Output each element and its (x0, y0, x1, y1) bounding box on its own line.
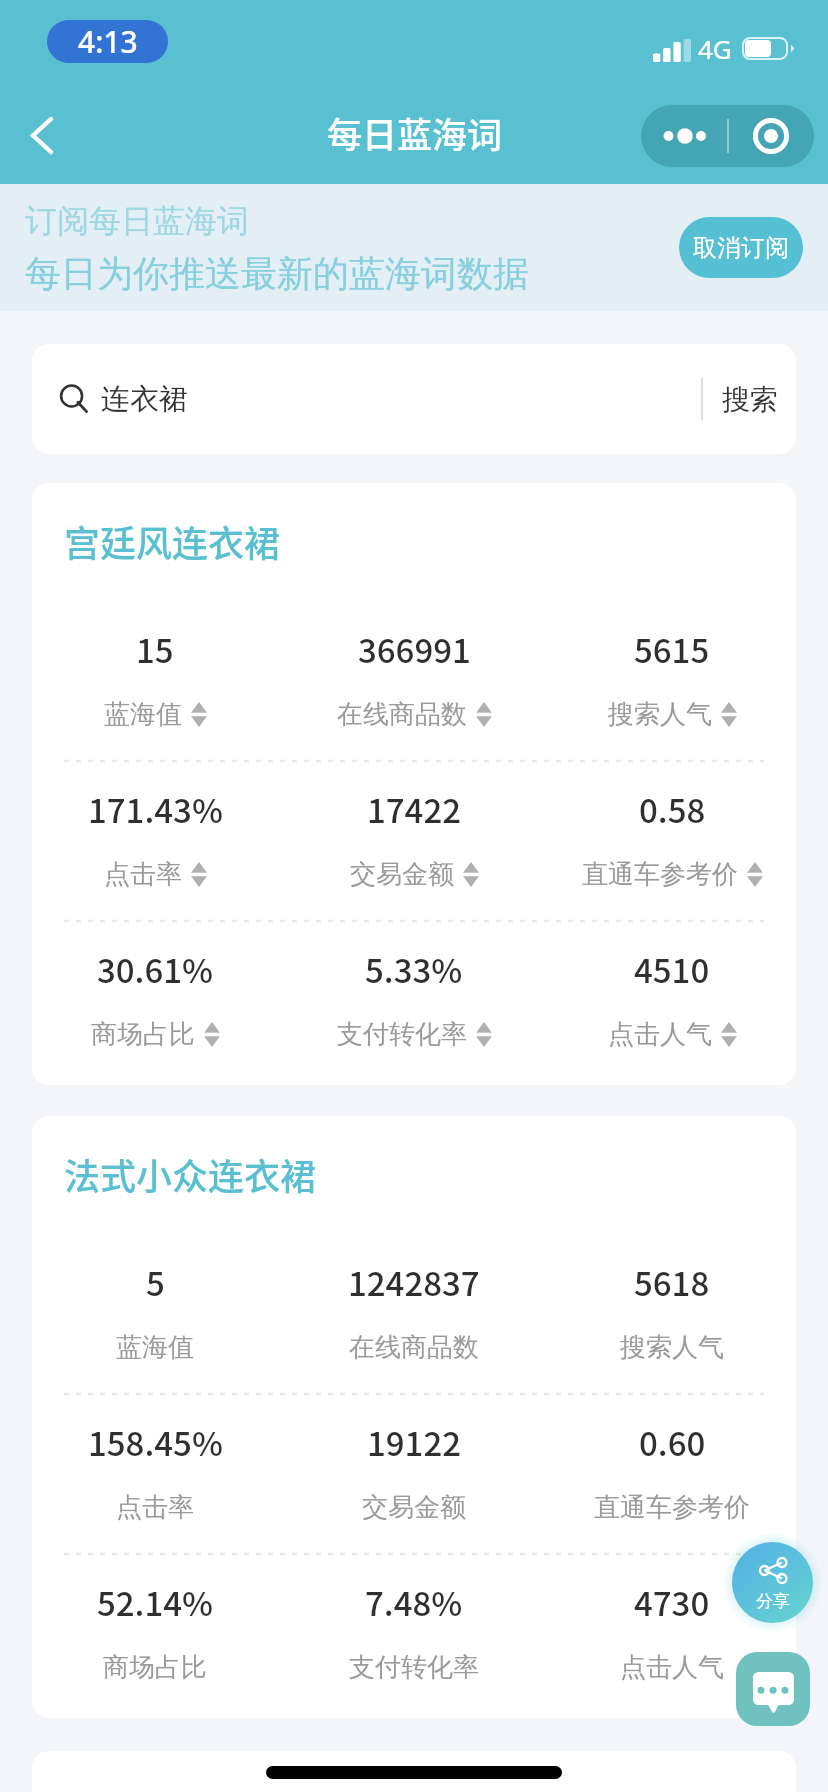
staticText: 0.58 (639, 785, 706, 833)
staticText: 366991 (358, 625, 471, 673)
staticText: 点击率 (116, 1491, 194, 1524)
button[interactable]: 宫廷风连衣裙 (32, 483, 796, 1085)
staticText: 分享 (756, 1591, 790, 1612)
staticText: 直通车参考价 (582, 858, 738, 891)
staticText: 17422 (367, 785, 462, 833)
button[interactable]: 分享 (732, 1542, 813, 1623)
staticText: 171.43% (88, 785, 223, 833)
staticText: 搜索 (722, 382, 778, 417)
staticText: 点击人气 (608, 1018, 712, 1051)
staticText: 直通车参考价 (594, 1491, 750, 1524)
staticText: 在线商品数 (337, 698, 467, 731)
button[interactable]: More options (641, 105, 727, 167)
staticText: 4510 (634, 945, 710, 993)
staticText: 0.60 (639, 1418, 706, 1466)
button[interactable]: Customer service chat (736, 1652, 810, 1726)
staticText: 4:13 (78, 21, 138, 62)
staticText: 蓝海值 (116, 1331, 194, 1364)
staticText: 商场占比 (91, 1018, 195, 1051)
button[interactable]: 取消订阅 (679, 217, 803, 278)
staticText: 取消订阅 (693, 233, 789, 263)
staticText: 每日蓝海词 (327, 107, 503, 158)
staticText: 宫廷风连衣裙 (64, 515, 281, 567)
staticText: 4G (698, 31, 732, 66)
staticText: 在线商品数 (349, 1331, 479, 1364)
staticText: 5618 (634, 1258, 710, 1306)
staticText: 点击人气 (620, 1651, 724, 1684)
button[interactable]: 连衣裙 (32, 344, 701, 454)
staticText: 7.48% (365, 1578, 463, 1626)
staticText: 30.61% (97, 945, 214, 993)
staticText: 52.14% (97, 1578, 214, 1626)
staticText: 点击率 (104, 858, 182, 891)
button[interactable]: Close mini program (728, 105, 814, 167)
button[interactable]: 法式小众连衣裙 (32, 1116, 796, 1718)
staticText: 158.45% (88, 1418, 223, 1466)
staticText: 19122 (367, 1418, 462, 1466)
staticText: 商场占比 (103, 1651, 207, 1684)
button[interactable] (32, 1751, 796, 1792)
staticText: 法式小众连衣裙 (64, 1148, 317, 1200)
staticText: 每日为你推送最新的蓝海词数据 (25, 251, 529, 296)
staticText: 支付转化率 (349, 1651, 479, 1684)
staticText: 蓝海值 (104, 698, 182, 731)
staticText: 5.33% (365, 945, 463, 993)
button[interactable]: Back (8, 101, 76, 169)
staticText: 15 (136, 625, 174, 673)
staticText: 5615 (634, 625, 710, 673)
staticText: 交易金额 (350, 858, 454, 891)
staticText: 连衣裙 (101, 381, 188, 418)
staticText: 交易金额 (362, 1491, 466, 1524)
staticText: 4730 (634, 1578, 710, 1626)
staticText: 搜索人气 (620, 1331, 724, 1364)
button[interactable]: 搜索 (703, 344, 796, 454)
staticText: 5 (146, 1258, 165, 1306)
staticText: 支付转化率 (337, 1018, 467, 1051)
staticText: 搜索人气 (608, 698, 712, 731)
staticText: 1242837 (348, 1258, 480, 1306)
staticText: 订阅每日蓝海词 (25, 201, 249, 241)
